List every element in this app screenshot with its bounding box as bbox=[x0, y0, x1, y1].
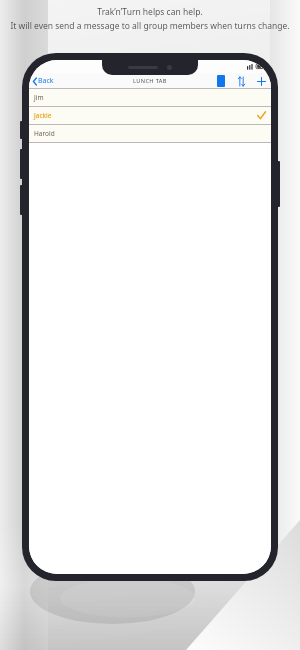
button[interactable]: Harold bbox=[29, 125, 271, 142]
staticText: Jackie bbox=[34, 111, 52, 120]
staticText: LUNCH TAB bbox=[133, 77, 167, 84]
button[interactable]: Jim bbox=[29, 89, 271, 106]
button[interactable]: Jackie bbox=[29, 107, 271, 124]
button[interactable]: Highlight bbox=[217, 75, 225, 87]
button[interactable]: Add bbox=[255, 75, 267, 87]
staticText: It will even send a message to all group… bbox=[10, 20, 290, 32]
staticText: Harold bbox=[34, 129, 55, 138]
button[interactable]: Sort bbox=[235, 75, 247, 87]
button[interactable]: Back bbox=[29, 75, 58, 87]
staticText: Trak’n’Turn helps can help. bbox=[97, 6, 203, 18]
staticText: Back bbox=[38, 76, 54, 86]
staticText: Jim bbox=[34, 93, 44, 102]
